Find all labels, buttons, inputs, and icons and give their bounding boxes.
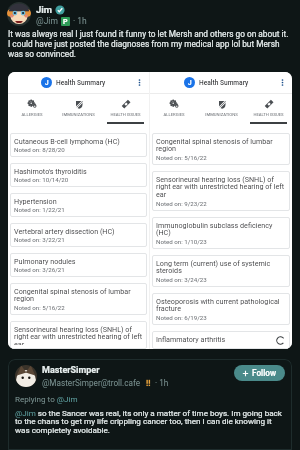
- button[interactable]: Cutaneous B-cell lymphoma (HC): [10, 133, 147, 157]
- staticText: IMMUNIZATIONS: [205, 112, 238, 117]
- button[interactable]: Vertebral artery dissection (HC): [10, 223, 147, 247]
- staticText: Sensorineural hearing loss (SNHL) of rig…: [156, 175, 286, 199]
- staticText: ALLERGIES: [21, 112, 43, 117]
- staticText: Noted on: 3/26/21: [14, 266, 65, 273]
- button[interactable]: Follow: [234, 365, 285, 381]
- button[interactable]: Inflammatory arthritis: [152, 331, 290, 349]
- staticText: Congenital spinal stenosis of lumbar reg…: [14, 287, 143, 303]
- staticText: Noted on: 9/23/22: [156, 200, 207, 207]
- staticText: Osteoporosis with current pathological f…: [156, 297, 286, 313]
- staticText: @Jim so the Sancer was real, its only a …: [15, 408, 285, 435]
- button[interactable]: HEALTH ISSUES: [102, 94, 149, 124]
- staticText: @MasterSimper@troll.cafe: [42, 378, 141, 388]
- button[interactable]: ALLERGIES: [150, 94, 198, 124]
- staticText: ALLERGIES: [163, 112, 185, 117]
- staticText: · 1h: [73, 16, 87, 26]
- staticText: HEALTH ISSUES: [110, 112, 141, 117]
- staticText: Noted on: 3/24/23: [156, 276, 207, 283]
- staticText: Hypertension: [14, 197, 57, 205]
- button[interactable]: Immunoglobulin subclass deficiency (HC): [152, 217, 290, 249]
- staticText: MasterSimper: [42, 365, 100, 376]
- staticText: Congenital spinal stenosis of lumbar reg…: [156, 137, 286, 153]
- staticText: Cutaneous B-cell lymphoma (HC): [14, 137, 120, 145]
- button[interactable]: Congenital spinal stenosis of lumbar reg…: [152, 133, 290, 165]
- staticText: Vertebral artery dissection (HC): [14, 227, 115, 235]
- button[interactable]: Osteoporosis with current pathological f…: [152, 293, 290, 325]
- button[interactable]: Sensorineural hearing loss (SNHL) of rig…: [10, 321, 147, 349]
- button[interactable]: Sensorineural hearing loss (SNHL) of rig…: [152, 171, 290, 211]
- button[interactable]: More options: [278, 78, 287, 87]
- staticText: Health Summary: [199, 79, 249, 87]
- staticText: Noted on: 6/19/23: [156, 314, 207, 321]
- staticText: Noted on: 8/28/20: [14, 146, 65, 153]
- staticText: Noted on: 1/10/23: [156, 238, 207, 245]
- staticText: Long term (current) use of systemic ster…: [156, 259, 286, 275]
- staticText: Hashimoto's thyroiditis: [14, 167, 87, 175]
- staticText: Immunoglobulin subclass deficiency (HC): [156, 221, 286, 237]
- button[interactable]: Long term (current) use of systemic ster…: [152, 255, 290, 287]
- button[interactable]: Congenital spinal stenosis of lumbar reg…: [10, 283, 147, 315]
- staticText: Noted on: 5/16/22: [156, 154, 207, 161]
- staticText: Noted on: 5/16/22: [14, 304, 65, 311]
- staticText: Jim: [36, 4, 53, 15]
- staticText: Replying to @Jim: [15, 394, 78, 403]
- button[interactable]: IMMUNIZATIONS: [55, 94, 102, 124]
- staticText: HEALTH ISSUES: [253, 112, 284, 117]
- button[interactable]: ALLERGIES: [8, 94, 55, 124]
- staticText: Health Summary: [56, 79, 106, 87]
- staticText: Noted on: 10/14/20: [14, 176, 69, 183]
- staticText: Follow: [252, 368, 277, 378]
- button[interactable]: Pulmonary nodules: [10, 253, 147, 277]
- staticText: Inflammatory arthritis: [156, 335, 226, 343]
- staticText: Pulmonary nodules: [14, 257, 76, 265]
- staticText: P: [63, 18, 68, 26]
- button[interactable]: Hypertension: [10, 193, 147, 217]
- staticText: @Jim: [36, 16, 58, 26]
- staticText: J: [188, 79, 192, 87]
- staticText: Noted on: 1/22/21: [14, 206, 65, 213]
- staticText: Noted on: 3/22/21: [14, 236, 65, 243]
- staticText: It was always real I just found it funny…: [8, 29, 292, 59]
- staticText: J: [45, 79, 49, 87]
- staticText: · 1h: [155, 378, 169, 388]
- staticText: Sensorineural hearing loss (SNHL) of rig…: [14, 325, 143, 345]
- button[interactable]: IMMUNIZATIONS: [198, 94, 245, 124]
- button[interactable]: HEALTH ISSUES: [245, 94, 292, 124]
- button[interactable]: Hashimoto's thyroiditis: [10, 163, 147, 187]
- staticText: IMMUNIZATIONS: [62, 112, 95, 117]
- button[interactable]: More options: [135, 78, 144, 87]
